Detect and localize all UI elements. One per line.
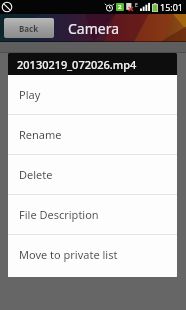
button[interactable]: Rename: [8, 115, 177, 154]
staticText: Camera: [68, 19, 120, 38]
button[interactable]: Play: [8, 75, 177, 114]
staticText: Move to private list: [19, 247, 118, 262]
staticText: 20130219_072026.mp4: [17, 57, 137, 72]
staticText: 15:01: [160, 1, 184, 13]
staticText: Rename: [19, 127, 62, 142]
staticText: 2: [118, 3, 122, 11]
button[interactable]: Move to private list: [8, 235, 177, 274]
staticText: Play: [19, 87, 41, 102]
button[interactable]: File Description: [8, 195, 177, 234]
staticText: E: [135, 2, 138, 9]
staticText: File Description: [19, 207, 99, 222]
button[interactable]: Back: [4, 18, 54, 38]
staticText: Delete: [19, 167, 53, 182]
staticText: Back: [19, 23, 39, 34]
button[interactable]: Delete: [8, 155, 177, 194]
